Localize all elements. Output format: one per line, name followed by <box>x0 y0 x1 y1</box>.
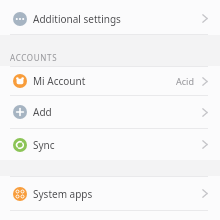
staticText: Mi Account <box>33 74 86 88</box>
button[interactable]: Add <box>0 96 220 128</box>
button[interactable]: Mi Account <box>0 67 220 95</box>
button[interactable]: Additional settings <box>0 3 220 34</box>
staticText: Sync <box>33 138 55 152</box>
staticText: ACCOUNTS <box>10 52 58 63</box>
staticText: Add <box>33 105 52 119</box>
button[interactable]: Sync <box>0 129 220 160</box>
staticText: System apps <box>33 187 93 201</box>
staticText: Additional settings <box>33 12 121 26</box>
staticText: Acid <box>176 75 194 87</box>
button[interactable]: System apps <box>0 177 220 210</box>
